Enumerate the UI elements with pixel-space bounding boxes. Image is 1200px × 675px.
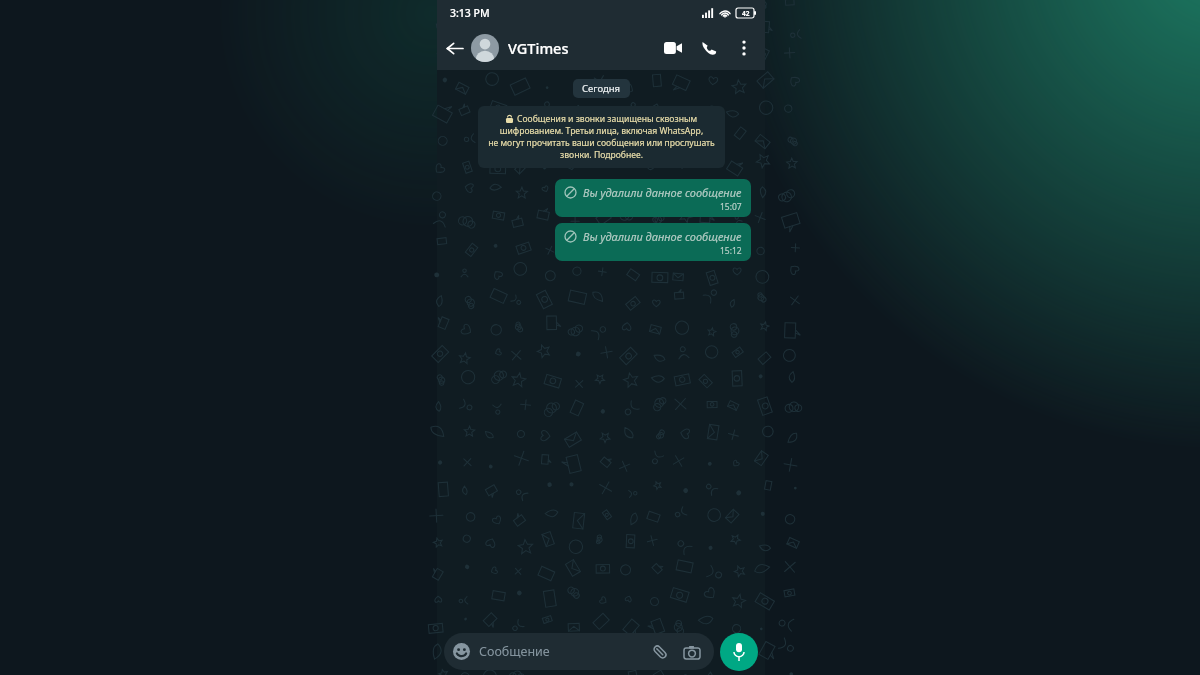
staticText: Вы удалили данное сообщение <box>583 185 742 200</box>
staticText: 15:12 <box>720 245 742 257</box>
staticText: 15:07 <box>720 201 742 213</box>
staticText: 42 <box>742 9 750 18</box>
staticText: VGTimes <box>508 38 569 58</box>
staticText: Вы удалили данное сообщение <box>583 229 742 244</box>
button[interactable]: Camera <box>679 639 705 665</box>
button[interactable]: Сообщения и звонки защищены сквозным <box>478 106 725 168</box>
button[interactable]: Back <box>437 31 471 65</box>
button[interactable]: VGTimes <box>471 26 655 70</box>
staticText: Сообщение <box>479 643 550 660</box>
staticText: Сегодня <box>582 82 621 95</box>
button[interactable]: Вы удалили данное сообщение <box>555 179 751 217</box>
staticText: шифрованием. Третьи лица, включая WhatsA… <box>488 125 715 161</box>
button[interactable]: More options <box>727 31 761 65</box>
other: Emoji <box>453 643 470 660</box>
button[interactable]: Video call <box>655 30 691 66</box>
staticText: 3:13 PM <box>450 6 490 20</box>
button[interactable]: Call <box>691 30 727 66</box>
button[interactable]: Voice message <box>720 633 758 671</box>
button[interactable]: Emoji <box>444 633 714 670</box>
button[interactable]: Attach <box>647 639 673 665</box>
button[interactable]: Вы удалили данное сообщение <box>555 223 751 261</box>
staticText: Сообщения и звонки защищены сквозным <box>517 113 698 125</box>
